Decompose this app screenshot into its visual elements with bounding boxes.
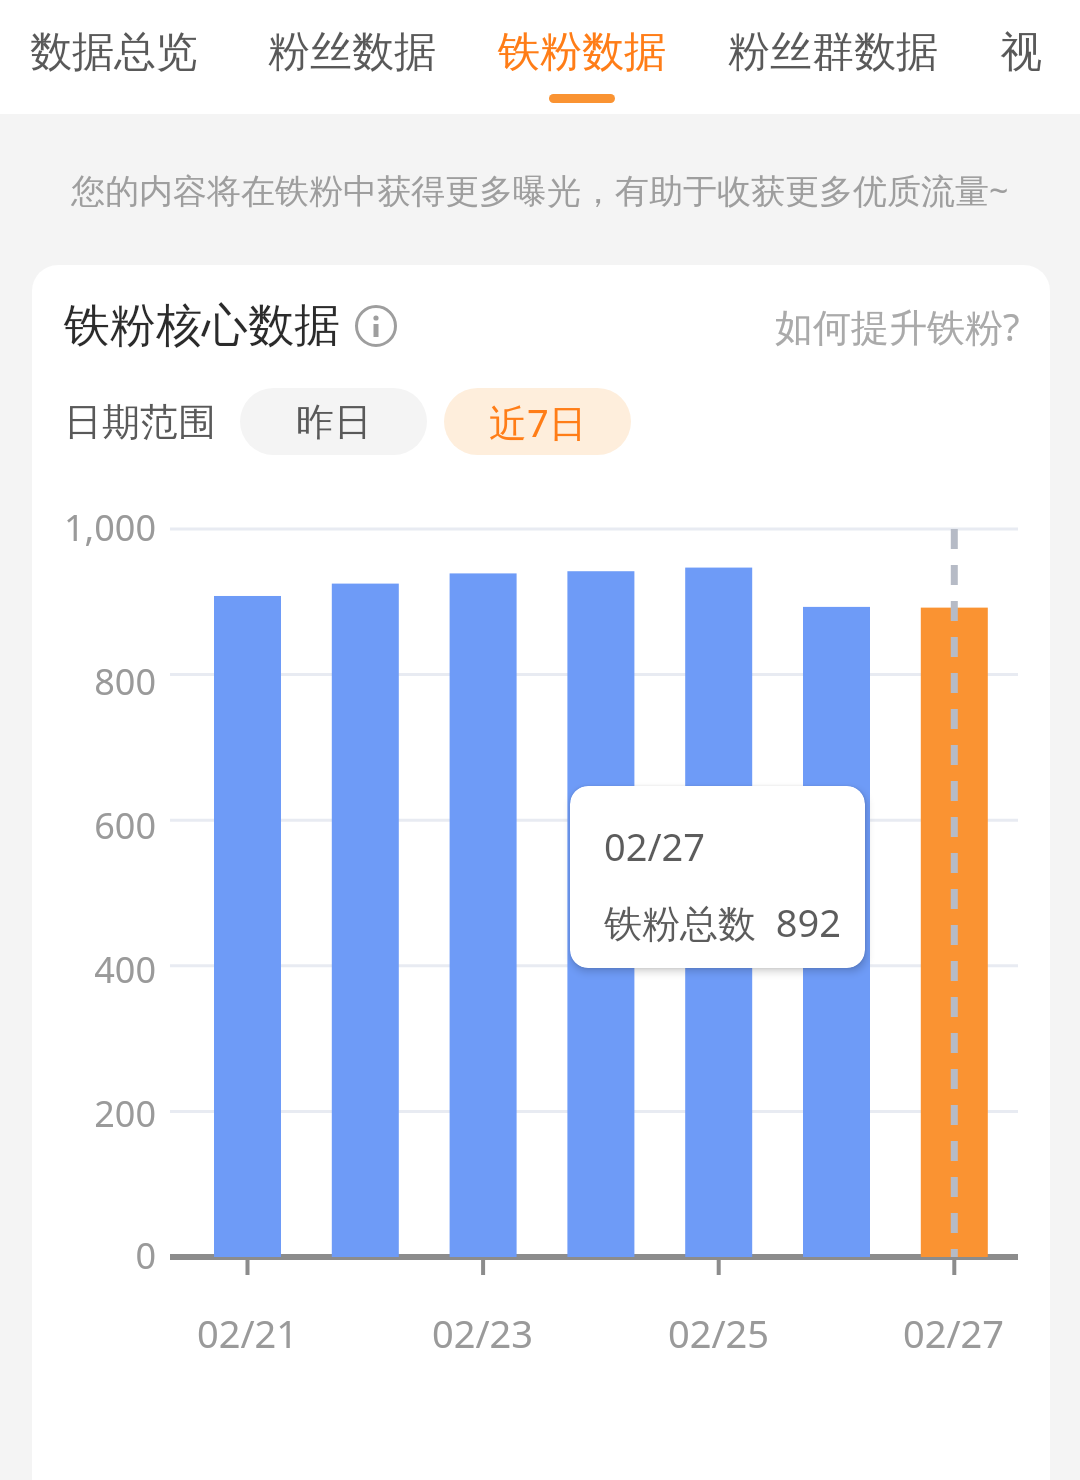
staticText: 02/23 [432,1307,534,1359]
button[interactable]: 如何提升铁粉? [775,300,1020,352]
button[interactable]: 昨日 [240,388,427,455]
button[interactable]: 数据总览 [30,0,198,94]
staticText: 铁粉总数 892 [604,896,841,948]
staticText: 02/25 [668,1307,770,1359]
staticText: 铁粉核心数据 [64,297,340,355]
button[interactable]: 近7日 [444,388,631,455]
button[interactable]: 视 [1000,0,1042,94]
staticText: 800 [94,657,156,706]
staticText: 400 [94,945,156,994]
button[interactable]: Info [354,304,398,348]
staticText: 1,000 [63,503,156,552]
staticText: 0 [135,1231,156,1280]
staticText: 600 [94,801,156,850]
staticText: 200 [94,1089,156,1138]
staticText: 如何提升铁粉? [775,300,1020,352]
staticText: 日期范围 [64,398,216,446]
staticText: 粉丝数据 [268,26,436,79]
button[interactable]: 粉丝群数据 [728,0,938,94]
staticText: 您的内容将在铁粉中获得更多曝光，有助于收获更多优质流量~ [71,167,1009,213]
staticText: 02/21 [197,1307,299,1359]
staticText: 02/27 [604,820,706,872]
staticText: 近7日 [489,396,587,448]
staticText: 昨日 [296,398,372,446]
button[interactable]: 铁粉数据 [498,0,666,103]
staticText: 铁粉数据 [498,26,666,79]
staticText: 粉丝群数据 [728,26,938,79]
staticText: 视 [1000,26,1042,79]
staticText: 02/27 [903,1307,1005,1359]
staticText: 数据总览 [30,26,198,79]
button[interactable]: 粉丝数据 [268,0,436,94]
